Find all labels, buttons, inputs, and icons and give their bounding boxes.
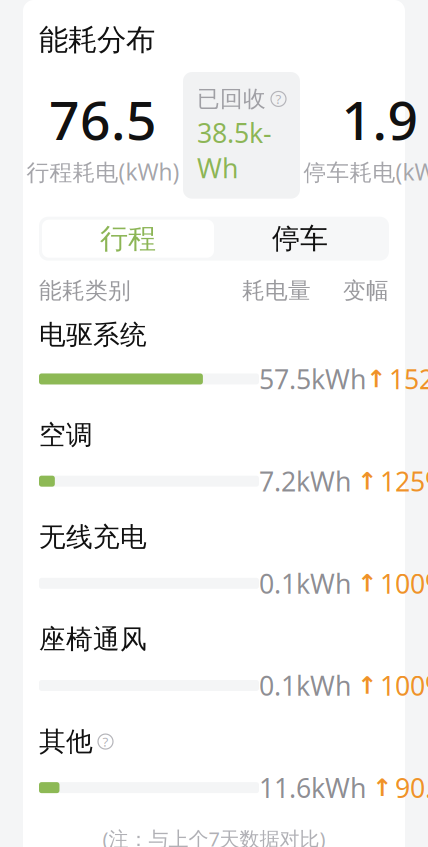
staticText: 无线充电 — [39, 521, 147, 554]
staticText: 座椅通风 — [39, 623, 147, 656]
staticText: 能耗类别 — [39, 277, 131, 304]
staticText: 空调 — [39, 419, 93, 451]
staticText: 7.2kWh — [259, 463, 351, 499]
staticText: 11.6kWh — [259, 770, 366, 805]
staticText: ? — [275, 90, 281, 108]
staticText: 行程 — [100, 221, 156, 256]
staticText: (注：与上个7天数据对比) — [102, 825, 325, 847]
staticText: ↑ — [357, 467, 377, 495]
staticText: 已回收 — [197, 85, 266, 113]
button[interactable]: 已回收 — [183, 72, 300, 199]
staticText: 100% — [380, 668, 428, 703]
staticText: 90.2% — [395, 770, 428, 805]
staticText: 0.1kWh — [259, 668, 351, 703]
staticText: 0.1kWh — [259, 566, 351, 601]
staticText: 耗电量 — [242, 277, 311, 304]
staticText: 152.2% — [389, 361, 428, 397]
staticText: 停车 — [272, 221, 328, 256]
button[interactable]: 停车 — [214, 220, 386, 258]
staticText: 76.5 — [49, 84, 157, 155]
staticText: ↑ — [366, 365, 386, 393]
staticText: 能耗分布 — [39, 22, 155, 58]
staticText: 其他 — [39, 725, 93, 758]
staticText: 100% — [380, 566, 428, 601]
staticText: 57.5kWh — [259, 361, 366, 397]
staticText: 电驱系统 — [39, 318, 147, 351]
staticText: ↑ — [372, 774, 392, 801]
button[interactable]: 行程 — [42, 220, 214, 258]
staticText: ↑ — [357, 672, 377, 699]
staticText: ↑ — [357, 570, 377, 597]
staticText: 停车耗电(kWh) — [303, 157, 428, 187]
staticText: ? — [102, 733, 108, 750]
staticText: 1.9 — [341, 84, 418, 155]
staticText: 行程耗电(kWh) — [26, 157, 179, 187]
staticText: 变幅 — [343, 277, 389, 304]
staticText: 125% — [380, 463, 428, 499]
staticText: 38.5kWh — [197, 115, 272, 186]
